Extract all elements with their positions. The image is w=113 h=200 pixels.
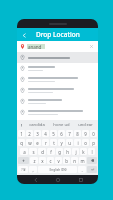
button[interactable] bbox=[17, 74, 98, 85]
button[interactable]: n bbox=[71, 157, 78, 164]
button[interactable] bbox=[17, 107, 98, 118]
staticText: d bbox=[41, 149, 44, 155]
staticText: l bbox=[91, 149, 93, 155]
staticText: o bbox=[84, 140, 87, 146]
staticText: w bbox=[28, 140, 32, 146]
staticText: 2 bbox=[28, 131, 31, 137]
staticText: m bbox=[80, 158, 85, 164]
button[interactable]: f bbox=[47, 148, 55, 155]
staticText: j bbox=[75, 149, 77, 155]
button[interactable]: e bbox=[34, 139, 41, 146]
button[interactable] bbox=[17, 52, 98, 63]
staticText: 1 bbox=[20, 131, 23, 137]
staticText: v bbox=[57, 158, 60, 164]
staticText: k bbox=[82, 149, 85, 155]
button[interactable]: Enter bbox=[87, 166, 97, 173]
button[interactable]: 6 bbox=[58, 130, 65, 137]
button[interactable]: 4 bbox=[42, 130, 49, 137]
button[interactable]: hone ud bbox=[49, 121, 73, 129]
button[interactable]: 1 bbox=[18, 130, 25, 137]
button[interactable]: i bbox=[74, 139, 81, 146]
staticText: . bbox=[81, 167, 83, 173]
staticText: n bbox=[73, 158, 76, 164]
button[interactable]: k bbox=[80, 148, 87, 155]
staticText: 6 bbox=[60, 131, 63, 137]
staticText: g bbox=[58, 149, 61, 155]
staticText: a bbox=[23, 149, 26, 155]
button[interactable]: p bbox=[90, 139, 97, 146]
staticText: 9 bbox=[84, 131, 87, 137]
button[interactable]: z bbox=[30, 157, 38, 164]
staticText: anand bbox=[28, 44, 42, 49]
button[interactable]: Recents bbox=[76, 175, 85, 184]
button[interactable] bbox=[17, 96, 98, 107]
button[interactable]: , bbox=[29, 166, 37, 173]
staticText: z bbox=[33, 158, 36, 164]
button[interactable]: Back bbox=[19, 30, 29, 40]
staticText: u bbox=[68, 140, 71, 146]
staticText: 8 bbox=[76, 131, 79, 137]
staticText: i bbox=[77, 140, 79, 146]
staticText: c bbox=[49, 158, 52, 164]
staticText: Drop Location bbox=[36, 30, 80, 39]
staticText: unclear bbox=[78, 122, 93, 128]
button[interactable]: a bbox=[20, 148, 28, 155]
button[interactable]: s bbox=[29, 148, 37, 155]
button[interactable]: ?!# bbox=[18, 166, 28, 173]
staticText: candida bbox=[29, 122, 45, 128]
button[interactable]: l bbox=[88, 148, 95, 155]
button[interactable]: c bbox=[47, 157, 54, 164]
button[interactable]: candida bbox=[25, 121, 49, 129]
button[interactable]: 5 bbox=[50, 130, 57, 137]
staticText: , bbox=[32, 167, 34, 173]
button[interactable]: y bbox=[58, 139, 65, 146]
staticText: x bbox=[41, 158, 44, 164]
button[interactable]: Voice input bbox=[18, 122, 25, 129]
staticText: y bbox=[60, 140, 63, 146]
button[interactable]: j bbox=[72, 148, 79, 155]
button[interactable]: x bbox=[39, 157, 46, 164]
staticText: hone ud bbox=[53, 122, 70, 128]
button[interactable]: o bbox=[82, 139, 89, 146]
button[interactable]: Back bbox=[31, 175, 40, 184]
button[interactable]: 0 bbox=[90, 130, 97, 137]
button[interactable]: 7 bbox=[66, 130, 73, 137]
staticText: 7 bbox=[68, 131, 71, 137]
staticText: p bbox=[92, 140, 95, 146]
button[interactable]: 8 bbox=[74, 130, 81, 137]
staticText: q bbox=[20, 140, 23, 146]
button[interactable]: g bbox=[56, 148, 63, 155]
button[interactable]: w bbox=[26, 139, 33, 146]
staticText: f bbox=[50, 149, 52, 155]
button[interactable]: anand bbox=[20, 41, 95, 52]
button[interactable]: Clear bbox=[88, 43, 95, 50]
button[interactable]: Shift bbox=[18, 157, 29, 164]
button[interactable]: Home bbox=[53, 175, 62, 184]
staticText: h bbox=[66, 149, 69, 155]
button[interactable]: Backspace bbox=[87, 157, 97, 164]
button[interactable]: 9 bbox=[82, 130, 89, 137]
button[interactable]: . bbox=[78, 166, 86, 173]
button[interactable]: 3 bbox=[34, 130, 41, 137]
staticText: 4 bbox=[44, 131, 47, 137]
staticText: b bbox=[65, 158, 68, 164]
button[interactable]: r bbox=[42, 139, 49, 146]
staticText: s bbox=[32, 149, 35, 155]
button[interactable]: unclear bbox=[73, 121, 97, 129]
button[interactable] bbox=[17, 63, 98, 74]
button[interactable]: m bbox=[79, 157, 86, 164]
button[interactable]: u bbox=[66, 139, 73, 146]
button[interactable]: v bbox=[55, 157, 62, 164]
staticText: r bbox=[45, 140, 47, 146]
button[interactable]: b bbox=[63, 157, 70, 164]
button[interactable]: d bbox=[38, 148, 46, 155]
button[interactable]: q bbox=[18, 139, 25, 146]
button[interactable]: t bbox=[50, 139, 57, 146]
staticText: 5 bbox=[52, 131, 55, 137]
staticText: English (IN) bbox=[49, 168, 67, 172]
button[interactable]: English (IN) bbox=[38, 166, 77, 173]
button[interactable] bbox=[17, 85, 98, 96]
button[interactable]: 2 bbox=[26, 130, 33, 137]
staticText: 0 bbox=[92, 131, 95, 137]
button[interactable]: h bbox=[64, 148, 71, 155]
